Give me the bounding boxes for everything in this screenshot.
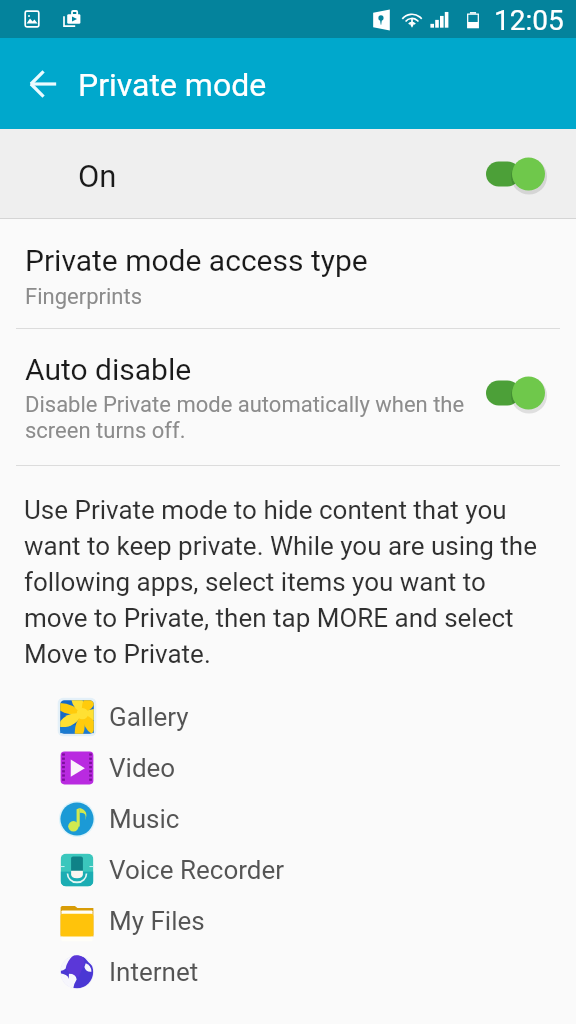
button[interactable]: Gallery	[0, 691, 576, 742]
staticText: Video	[109, 752, 176, 784]
button[interactable]: Auto disable	[0, 329, 576, 465]
button[interactable]: Navigate up	[14, 55, 72, 113]
staticText: 12:05	[494, 2, 564, 37]
button[interactable]: Video	[0, 742, 576, 793]
staticText: Private mode	[78, 64, 267, 104]
staticText: Voice Recorder	[109, 854, 285, 886]
staticText: My Files	[109, 905, 205, 937]
button[interactable]: Toggle switch	[486, 373, 546, 413]
button[interactable]: Private mode access type	[0, 219, 576, 328]
staticText: Fingerprints	[25, 282, 142, 310]
staticText: Music	[109, 803, 180, 835]
staticText: Internet	[109, 956, 199, 988]
button[interactable]: My Files	[0, 895, 576, 946]
staticText: Auto disable	[25, 350, 192, 388]
button[interactable]: On	[0, 129, 576, 218]
staticText: Disable Private mode automatically when …	[25, 391, 476, 443]
staticText: Gallery	[109, 701, 189, 733]
button[interactable]: Voice Recorder	[0, 844, 576, 895]
button[interactable]: Internet	[0, 946, 576, 997]
staticText: On	[78, 157, 117, 195]
staticText: Use Private mode to hide content that yo…	[24, 490, 554, 670]
staticText: Private mode access type	[25, 241, 368, 279]
button[interactable]: Music	[0, 793, 576, 844]
button[interactable]: Toggle switch	[486, 154, 546, 194]
